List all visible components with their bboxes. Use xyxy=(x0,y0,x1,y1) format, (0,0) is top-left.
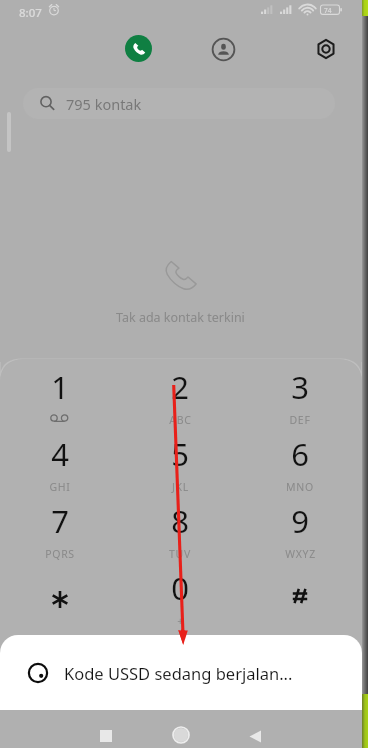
staticText: 2 xyxy=(171,366,189,408)
button[interactable]: Recent apps xyxy=(85,723,126,748)
button[interactable] xyxy=(2,567,118,625)
staticText: 6 xyxy=(291,433,309,475)
staticText: 0 xyxy=(171,567,189,609)
staticText: 7 xyxy=(51,500,69,542)
staticText: PQRS xyxy=(45,547,75,561)
staticText: 795 kontak xyxy=(66,94,142,114)
staticText: MNO xyxy=(286,480,314,494)
button[interactable]: 1 xyxy=(2,366,118,424)
staticText: JKL xyxy=(172,480,189,494)
staticText: + xyxy=(177,614,184,628)
staticText: 8:07 xyxy=(19,5,42,21)
button[interactable]: 7 xyxy=(2,500,118,558)
button[interactable]: Contacts xyxy=(211,37,236,62)
staticText: 8 xyxy=(171,500,189,542)
staticText: WXYZ xyxy=(285,547,316,561)
staticText: DEF xyxy=(289,413,311,427)
staticText: 5 xyxy=(171,433,189,475)
staticText: 9 xyxy=(291,500,309,542)
button[interactable]: Home xyxy=(160,722,201,748)
button[interactable]: Back xyxy=(234,723,275,748)
staticText: 74 xyxy=(324,6,332,15)
staticText: TUV xyxy=(169,547,191,561)
staticText: 1 xyxy=(51,366,69,408)
staticText: GHI xyxy=(49,480,71,494)
button[interactable]: Settings xyxy=(313,36,339,62)
staticText: Tak ada kontak terkini xyxy=(116,309,245,326)
staticText: 4 xyxy=(51,433,69,475)
button[interactable]: 2 xyxy=(122,366,238,424)
button[interactable]: 9 xyxy=(242,500,358,558)
button[interactable]: 5 xyxy=(122,433,238,491)
button[interactable]: 0 xyxy=(122,567,238,625)
button[interactable]: 6 xyxy=(242,433,358,491)
staticText: Kode USSD sedang berjalan... xyxy=(64,662,293,684)
button[interactable]: 795 kontak xyxy=(23,88,335,119)
staticText: 3 xyxy=(291,366,309,408)
button[interactable] xyxy=(242,567,358,625)
button[interactable]: 3 xyxy=(242,366,358,424)
button[interactable]: 4 xyxy=(2,433,118,491)
staticText: ABC xyxy=(169,413,192,427)
button[interactable]: 8 xyxy=(122,500,238,558)
button[interactable]: Kode USSD sedang berjalan... xyxy=(0,635,362,713)
button[interactable]: Dialpad xyxy=(125,35,152,62)
